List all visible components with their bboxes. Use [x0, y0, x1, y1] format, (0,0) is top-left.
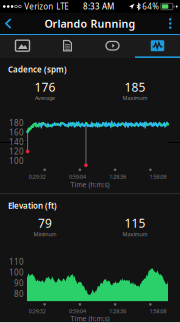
staticText: Maximum [122, 94, 147, 102]
button[interactable]: More options [160, 13, 180, 34]
staticText: 8:33 AM [83, 1, 114, 12]
staticText: 64% [142, 1, 159, 12]
staticText: Average [35, 94, 55, 102]
staticText: 79 [38, 215, 52, 231]
staticText: 180 [9, 118, 24, 128]
staticText: Maximum [122, 231, 147, 238]
button[interactable]: Details [45, 35, 90, 58]
staticText: 110 [9, 256, 24, 267]
staticText: Elevation (ft) [8, 200, 57, 211]
staticText: 80 [14, 289, 24, 299]
staticText: 0:29:32 [29, 173, 46, 180]
staticText: LTE [56, 1, 68, 12]
staticText: 100 [9, 267, 24, 278]
staticText: Time (h:m:s) [70, 180, 109, 189]
staticText: 0:59:04 [69, 308, 86, 315]
staticText: 1:58:08 [149, 173, 166, 180]
staticText: 0:59:04 [69, 173, 86, 180]
staticText: 120 [9, 146, 24, 157]
staticText: 140 [9, 137, 24, 147]
button[interactable]: Photos [0, 35, 45, 58]
staticText: 185 [124, 79, 145, 95]
staticText: 1:58:08 [149, 308, 166, 315]
staticText: 115 [124, 215, 145, 231]
staticText: 0:29:32 [29, 308, 46, 315]
staticText: 176 [34, 79, 55, 95]
staticText: 100 [9, 156, 24, 166]
staticText: Time (h:m:s) [70, 314, 109, 323]
button[interactable]: Laps [90, 35, 135, 58]
staticText: 1:28:36 [109, 308, 126, 315]
staticText: 90 [14, 278, 24, 288]
button[interactable]: Back [0, 13, 19, 34]
staticText: Minimum [33, 231, 56, 238]
staticText: 1:28:36 [109, 173, 126, 180]
staticText: 160 [9, 127, 24, 138]
staticText: Verizon [24, 1, 53, 12]
staticText: Cadence (spm) [8, 64, 67, 75]
button[interactable]: Graphs [135, 35, 180, 58]
staticText: Orlando Running [44, 16, 135, 31]
